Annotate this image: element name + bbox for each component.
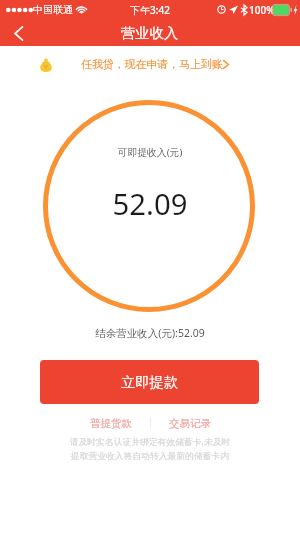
button[interactable]: 交易记录 <box>161 413 219 434</box>
staticText: 普提货款 <box>90 417 132 430</box>
button[interactable]: 任我贷，现在申请，马上到账 <box>0 51 300 78</box>
staticText: 请及时实名认证并绑定有效储蓄卡,未及时 提取营业收入将自动转入最新的储蓄卡内 <box>0 436 300 461</box>
staticText: 52.09 <box>0 184 300 224</box>
staticText: 营业收入 <box>121 24 179 42</box>
staticText: 中国联通 <box>33 3 73 16</box>
staticText: 100% <box>249 3 275 17</box>
button[interactable]: 普提货款 <box>82 413 140 434</box>
staticText: 任我贷，现在申请，马上到账 <box>81 58 223 72</box>
staticText: 结余营业收入(元):52.09 <box>0 326 300 340</box>
staticText: 交易记录 <box>169 417 211 430</box>
button[interactable]: Back <box>0 20 36 46</box>
staticText: 可即提收入(元) <box>0 146 300 159</box>
button[interactable]: 立即提款 <box>40 360 259 404</box>
staticText: 立即提款 <box>121 373 179 391</box>
staticText: 下午3:42 <box>0 3 300 17</box>
